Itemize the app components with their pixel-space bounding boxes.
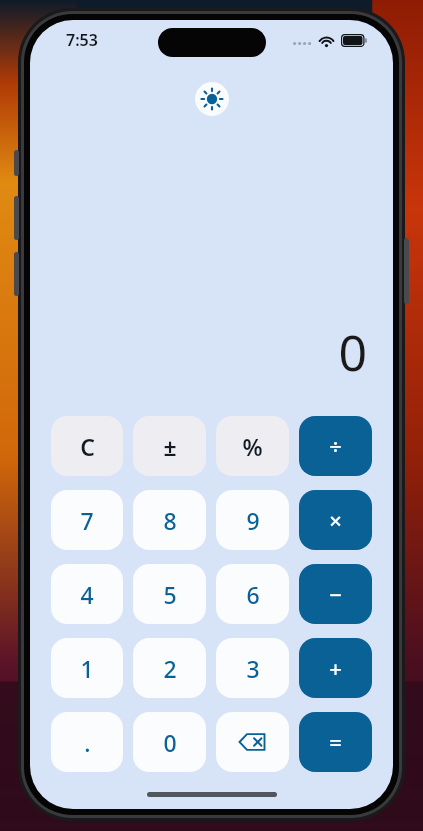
staticText: 7:53 (66, 29, 98, 51)
button[interactable]: 8 (133, 490, 206, 550)
button[interactable]: 2 (133, 638, 206, 698)
button[interactable]: ÷ (299, 416, 372, 476)
staticText: 5 (163, 579, 177, 610)
button[interactable]: − (299, 564, 372, 624)
staticText: 9 (246, 505, 260, 536)
button[interactable]: 7 (51, 490, 123, 550)
button[interactable]: Toggle light theme (195, 82, 229, 116)
button[interactable]: % (216, 416, 289, 476)
staticText: − (329, 579, 342, 609)
staticText: % (242, 431, 263, 462)
staticText: + (329, 653, 342, 683)
button[interactable]: C (51, 416, 123, 476)
staticText: 7 (80, 505, 94, 536)
staticText: 3 (246, 653, 260, 684)
staticText: × (329, 505, 342, 535)
staticText: 4 (80, 579, 94, 610)
staticText: 8 (163, 505, 177, 536)
button[interactable]: + (299, 638, 372, 698)
staticText: 1 (80, 653, 94, 684)
button[interactable]: ± (133, 416, 206, 476)
staticText: 6 (246, 579, 260, 610)
staticText: . (84, 727, 91, 758)
staticText: 2 (163, 653, 177, 684)
button[interactable]: 3 (216, 638, 289, 698)
staticText: 0 (30, 318, 367, 386)
staticText: ÷ (329, 431, 342, 461)
button[interactable]: . (51, 712, 123, 772)
button[interactable]: 6 (216, 564, 289, 624)
button[interactable]: 0 (133, 712, 206, 772)
button[interactable]: × (299, 490, 372, 550)
staticText: C (80, 431, 95, 462)
staticText: ± (163, 431, 177, 462)
button[interactable]: Backspace (216, 712, 289, 772)
button[interactable]: = (299, 712, 372, 772)
button[interactable]: 9 (216, 490, 289, 550)
staticText: = (329, 727, 342, 757)
button[interactable]: 5 (133, 564, 206, 624)
button[interactable]: 1 (51, 638, 123, 698)
staticText: 0 (163, 727, 177, 758)
button[interactable]: 4 (51, 564, 123, 624)
